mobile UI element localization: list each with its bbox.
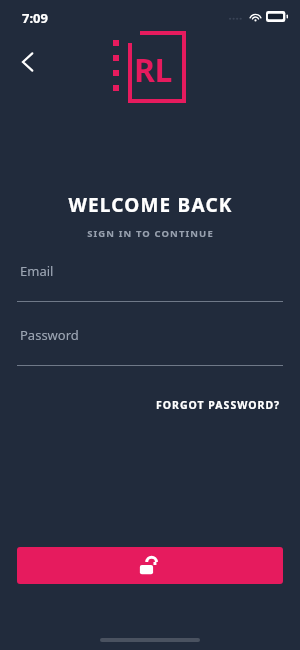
button[interactable]: Back <box>10 44 46 80</box>
button[interactable]: Password <box>17 326 283 366</box>
button[interactable]: Sign in <box>17 547 283 584</box>
staticText: SIGN IN TO CONTINUE <box>87 227 214 240</box>
button[interactable]: FORGOT PASSWORD? <box>154 394 283 416</box>
staticText: WELCOME BACK <box>68 192 233 218</box>
staticText: Email <box>20 262 54 280</box>
staticText: RL <box>134 48 172 92</box>
staticText: 7:09 <box>22 9 48 27</box>
staticText: FORGOT PASSWORD? <box>156 398 281 412</box>
button[interactable]: Email <box>17 262 283 302</box>
staticText: Password <box>20 326 79 344</box>
